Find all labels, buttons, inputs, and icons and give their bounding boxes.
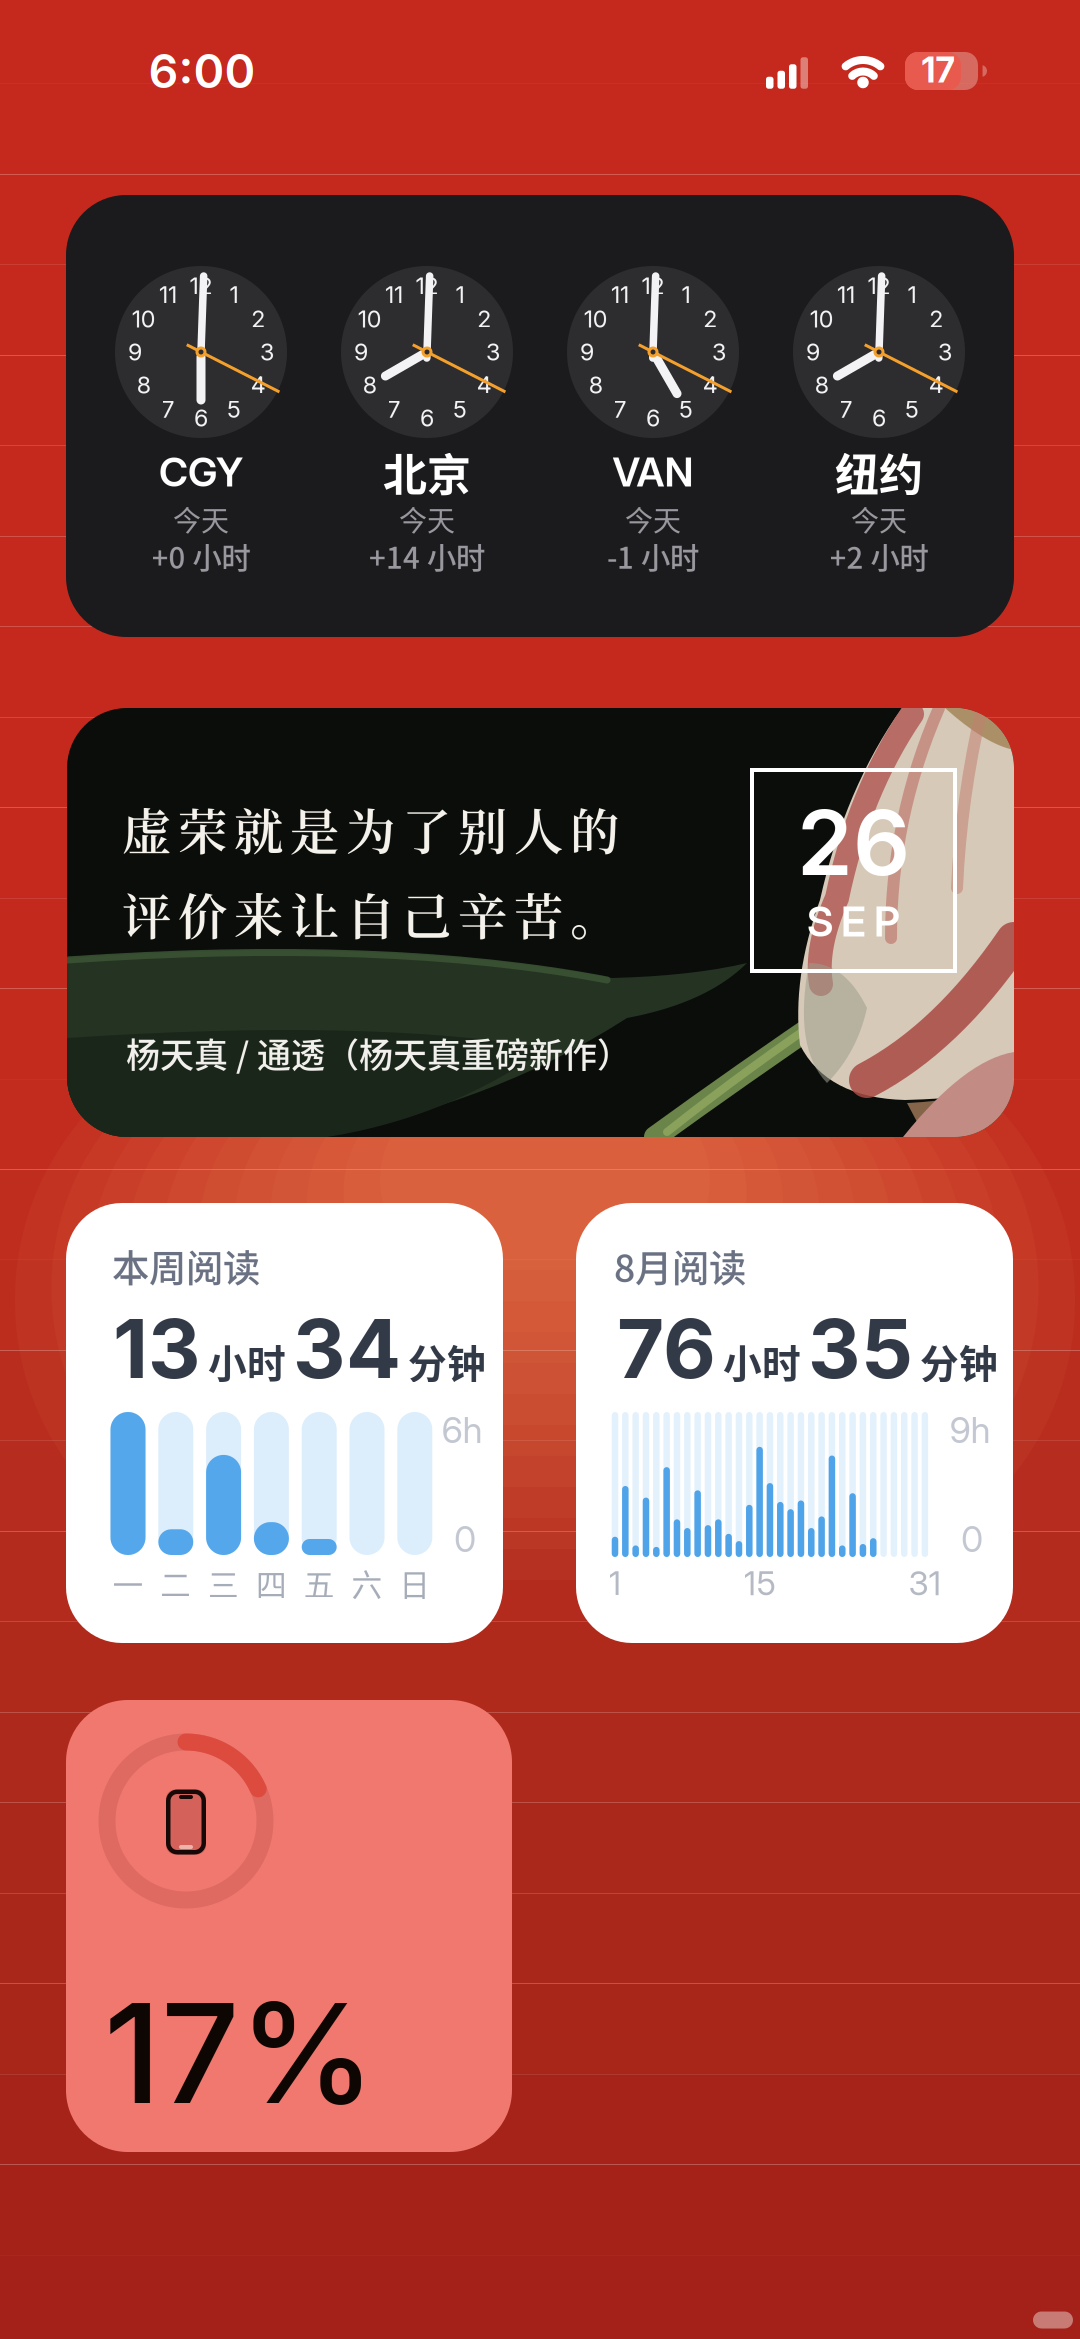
staticText: 9 — [128, 338, 142, 366]
staticText: 15 — [744, 1563, 776, 1603]
staticText: 7 — [387, 395, 400, 423]
staticText: 1 — [455, 281, 464, 309]
staticText: 9 — [354, 338, 368, 366]
staticText: +0 小时 — [151, 535, 250, 577]
staticText: 12 — [189, 272, 212, 300]
staticText: 5 — [679, 395, 693, 423]
staticText: 六 — [351, 1561, 382, 1605]
staticText: 3 — [938, 338, 952, 366]
staticText: 0 — [961, 1517, 983, 1561]
staticText: 今天 — [625, 499, 681, 539]
staticText: 2 — [703, 305, 717, 333]
staticText: 6h — [441, 1408, 482, 1452]
staticText: 五 — [304, 1561, 335, 1605]
staticText: 7 — [161, 395, 174, 423]
staticText: 3 — [260, 338, 274, 366]
staticText: 一 — [112, 1561, 143, 1605]
staticText: 10 — [132, 305, 156, 333]
staticText: 7 — [839, 395, 852, 423]
staticText: 2 — [929, 305, 943, 333]
staticText: 10 — [584, 305, 608, 333]
staticText: 12 — [867, 272, 890, 300]
staticText: 8月阅读 — [614, 1239, 746, 1293]
staticText: 8 — [363, 371, 377, 399]
staticText: 虚荣就是为了别人的 — [122, 793, 619, 864]
staticText: 2 — [251, 305, 265, 333]
staticText: 2 — [477, 305, 491, 333]
staticText: +14 小时 — [369, 535, 485, 577]
staticText: 12 — [415, 272, 438, 300]
staticText: 76 — [617, 1299, 716, 1398]
staticText: 本周阅读 — [112, 1239, 260, 1293]
button[interactable]: 本周阅读 — [66, 1203, 503, 1643]
staticText: 4 — [703, 371, 718, 399]
staticText: 10 — [358, 305, 382, 333]
staticText: 11 — [159, 281, 177, 309]
staticText: 6 — [194, 404, 208, 432]
staticText: 1 — [608, 1563, 621, 1603]
staticText: 评价来让自己辛苦。 — [122, 878, 619, 949]
staticText: 今天 — [851, 499, 907, 539]
staticText: 二 — [160, 1561, 191, 1605]
staticText: 12 — [641, 272, 664, 300]
staticText: 0 — [454, 1517, 476, 1561]
staticText: 9 — [806, 338, 820, 366]
button[interactable]: 17% — [66, 1700, 512, 2152]
staticText: 11 — [837, 281, 855, 309]
staticText: 17% — [104, 1970, 375, 2136]
staticText: 日 — [399, 1561, 430, 1605]
staticText: 9 — [580, 338, 594, 366]
staticText: 4 — [251, 371, 266, 399]
staticText: 小时 — [208, 1333, 286, 1389]
staticText: 1 — [681, 281, 690, 309]
button[interactable]: 虚荣就是为了别人的 — [67, 708, 1014, 1137]
staticText: 6 — [872, 404, 886, 432]
staticText: SEP — [807, 896, 900, 946]
staticText: CGY — [159, 448, 243, 496]
staticText: 6 — [646, 404, 660, 432]
staticText: 分钟 — [920, 1333, 998, 1389]
staticText: 34 — [293, 1299, 401, 1398]
staticText: 31 — [908, 1563, 941, 1603]
staticText: 4 — [477, 371, 492, 399]
staticText: 四 — [256, 1561, 287, 1605]
staticText: 35 — [808, 1299, 913, 1398]
staticText: 今天 — [399, 499, 455, 539]
staticText: 三 — [208, 1561, 239, 1605]
staticText: VAN — [612, 448, 693, 496]
staticText: 今天 — [173, 499, 229, 539]
staticText: 5 — [453, 395, 467, 423]
staticText: 17 — [921, 49, 954, 91]
staticText: 纽约 — [835, 440, 923, 504]
staticText: 26 — [797, 788, 910, 897]
staticText: 1 — [229, 281, 238, 309]
staticText: 5 — [905, 395, 919, 423]
staticText: 10 — [810, 305, 834, 333]
staticText: 11 — [611, 281, 629, 309]
staticText: 小时 — [723, 1333, 801, 1389]
staticText: 杨天真 / 通透（杨天真重磅新作） — [126, 1028, 631, 1078]
staticText: 8 — [589, 371, 603, 399]
staticText: 8 — [815, 371, 829, 399]
staticText: 7 — [613, 395, 626, 423]
button[interactable]: 8月阅读 — [576, 1203, 1013, 1643]
staticText: 4 — [929, 371, 944, 399]
staticText: 3 — [712, 338, 726, 366]
staticText: +2 小时 — [829, 535, 928, 577]
staticText: 1 — [907, 281, 916, 309]
staticText: 3 — [486, 338, 500, 366]
button[interactable]: 1 — [66, 195, 1014, 637]
staticText: 11 — [385, 281, 403, 309]
staticText: 13 — [113, 1299, 201, 1398]
staticText: 北京 — [383, 440, 471, 504]
staticText: 9h — [949, 1408, 990, 1452]
staticText: 分钟 — [408, 1333, 486, 1389]
staticText: -1 小时 — [607, 535, 699, 577]
staticText: 6 — [420, 404, 434, 432]
staticText: 5 — [227, 395, 241, 423]
staticText: 8 — [137, 371, 151, 399]
staticText: 6:00 — [148, 43, 255, 99]
